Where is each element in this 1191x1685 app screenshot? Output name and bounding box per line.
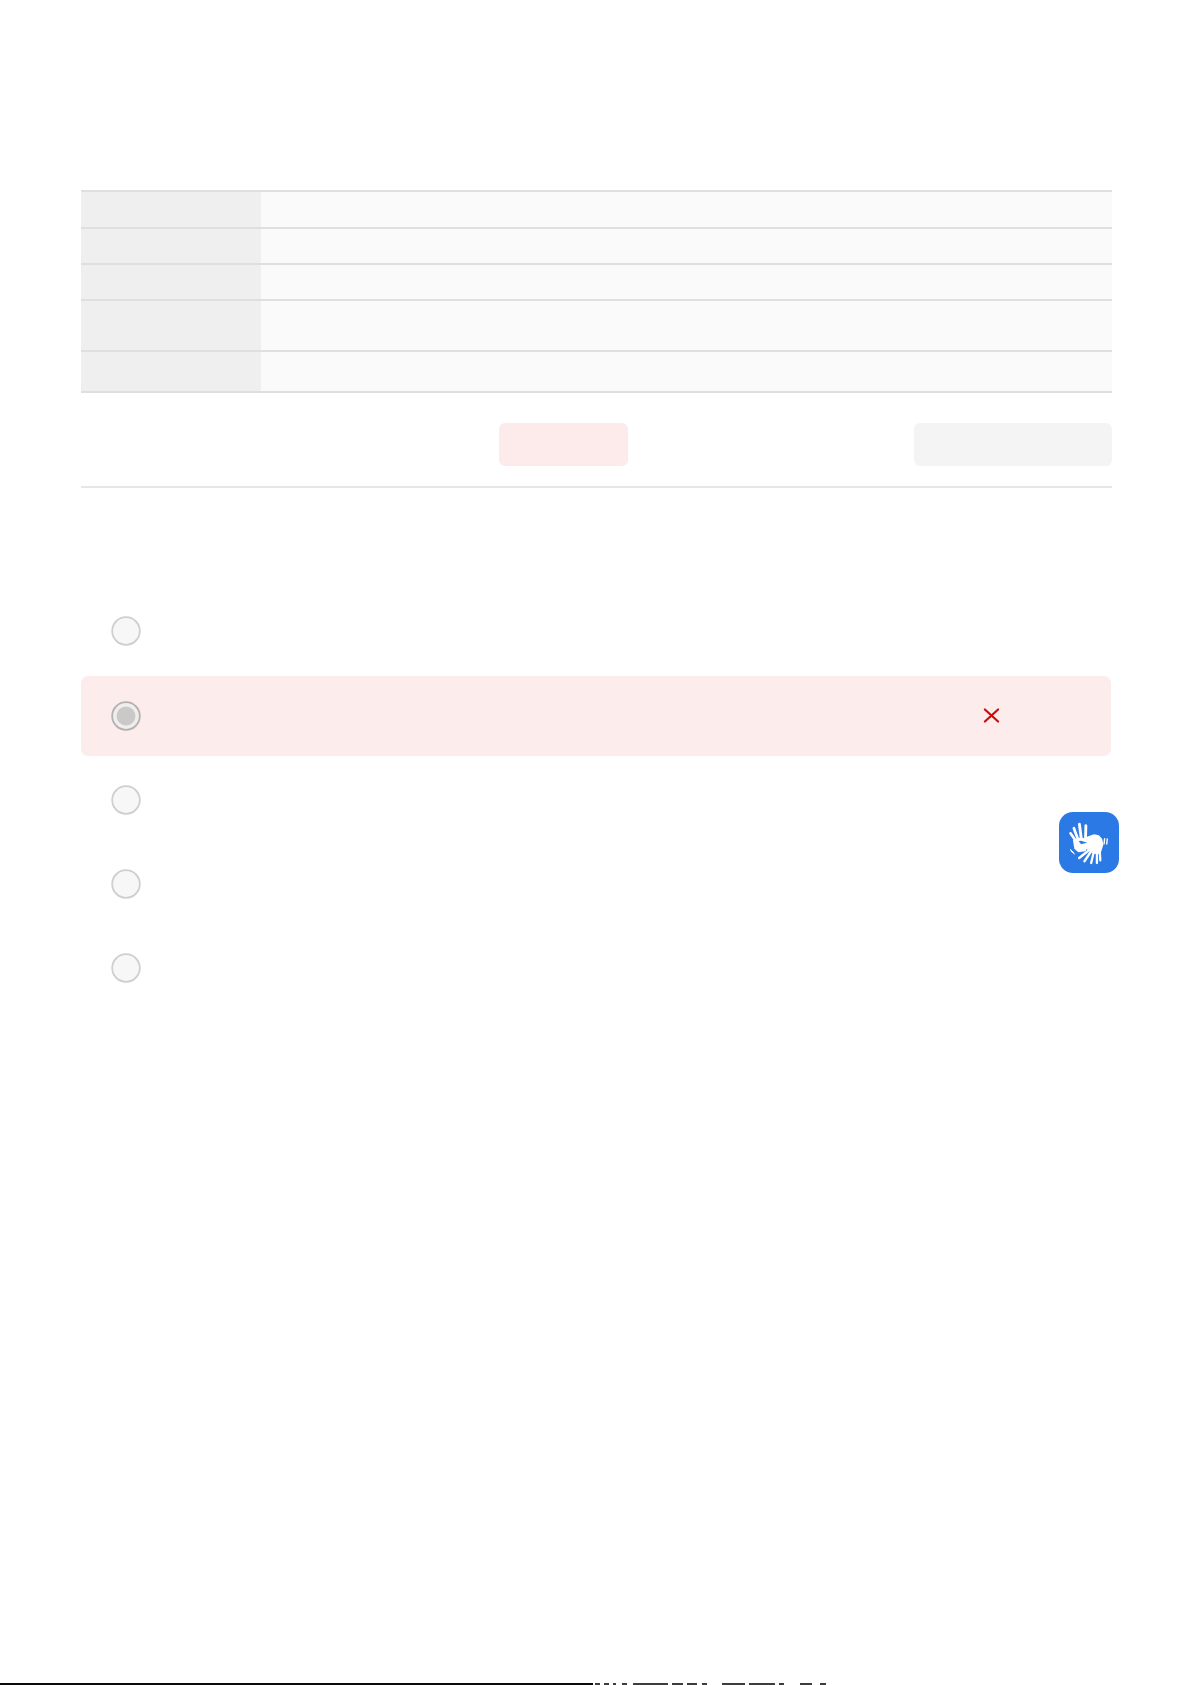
button[interactable]: Option (111, 616, 141, 646)
button[interactable]: Option (111, 869, 141, 899)
button[interactable]: Option (111, 785, 141, 815)
button[interactable]: Option (111, 701, 141, 731)
button[interactable]: Sign language interpretation (1059, 812, 1119, 873)
button[interactable] (81, 676, 1111, 756)
other: Incorrect (983, 707, 1000, 724)
button[interactable]: Option (111, 953, 141, 983)
